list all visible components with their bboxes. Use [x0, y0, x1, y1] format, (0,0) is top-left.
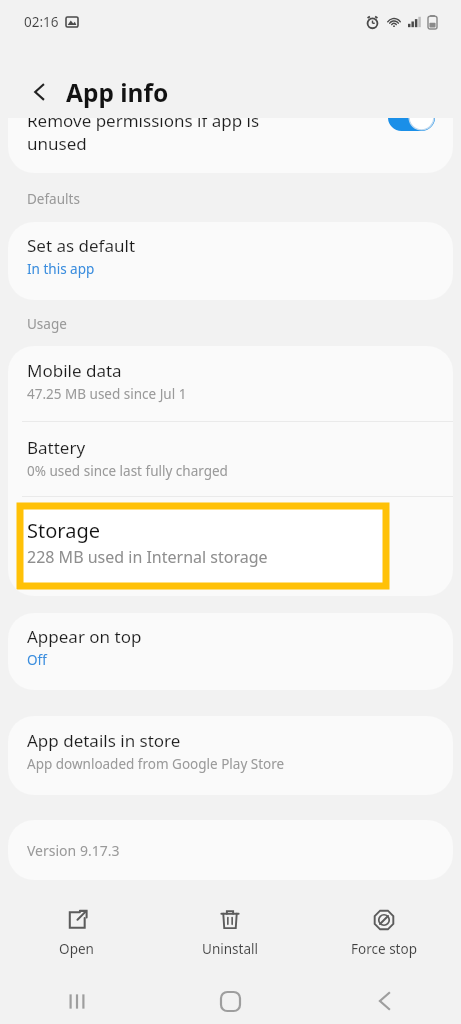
staticText: Defaults	[27, 190, 80, 208]
button[interactable]: Storage	[20, 506, 386, 586]
staticText: 02:16	[24, 13, 59, 31]
button[interactable]: Battery	[8, 422, 453, 496]
staticText: unused	[27, 132, 87, 155]
staticText: Uninstall	[202, 940, 258, 958]
staticText: 0% used since last fully charged	[27, 462, 228, 480]
button[interactable]: Home	[153, 978, 307, 1024]
button[interactable]: Recents	[0, 978, 153, 1024]
button[interactable]: Back	[22, 74, 58, 110]
staticText: Version 9.17.3	[27, 841, 120, 860]
staticText: 228 MB used in Internal storage	[27, 546, 268, 568]
staticText: Off	[27, 651, 47, 669]
staticText: Storage	[27, 517, 100, 544]
button[interactable]: App details in store	[8, 716, 453, 795]
staticText: Open	[59, 940, 94, 958]
button[interactable]: Appear on top	[8, 613, 453, 690]
button[interactable]: Remove permissions if app is	[8, 118, 453, 173]
staticText: Appear on top	[27, 625, 142, 648]
button[interactable]: Back	[307, 978, 461, 1024]
button[interactable]: Set as default	[8, 222, 453, 300]
staticText: App details in store	[27, 729, 181, 752]
button[interactable]: Mobile data	[8, 346, 453, 421]
staticText: App info	[66, 76, 169, 109]
staticText: Usage	[27, 315, 67, 333]
button[interactable]: Force stop	[307, 895, 461, 973]
staticText: Mobile data	[27, 359, 122, 382]
staticText: App downloaded from Google Play Store	[27, 755, 285, 773]
button[interactable]: Uninstall	[153, 895, 307, 973]
staticText: In this app	[27, 260, 95, 278]
staticText: Battery	[27, 436, 86, 459]
button[interactable]: Open	[0, 895, 153, 973]
staticText: Force stop	[351, 940, 417, 958]
staticText: 47.25 MB used since Jul 1	[27, 385, 187, 403]
staticText: Remove permissions if app is	[27, 118, 260, 132]
staticText: Set as default	[27, 234, 136, 257]
